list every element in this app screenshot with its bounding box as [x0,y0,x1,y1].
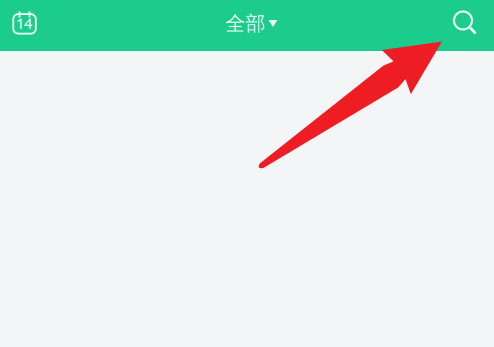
button[interactable]: Calendar [0,0,52,51]
staticText: 14 [16,13,32,33]
button[interactable]: Search [442,0,494,51]
staticText: 全部 [225,11,265,36]
button[interactable]: 全部 [215,0,279,51]
